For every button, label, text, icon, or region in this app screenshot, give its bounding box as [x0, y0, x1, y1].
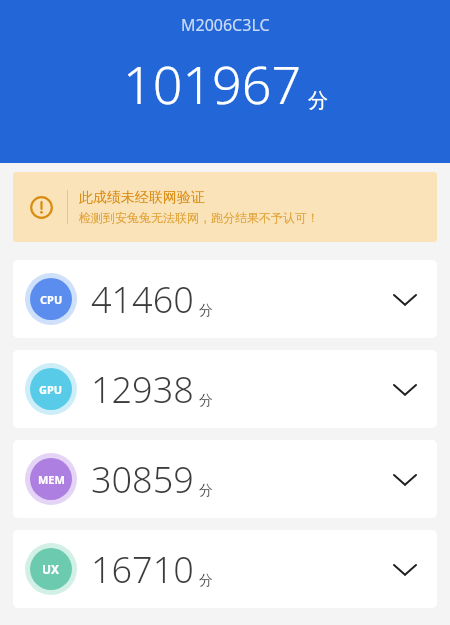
staticText: CPU: [40, 292, 63, 307]
staticText: 分: [308, 88, 328, 113]
staticText: 41460: [91, 275, 194, 324]
staticText: 16710: [91, 545, 194, 594]
staticText: 30859: [91, 455, 194, 504]
other: Warning: [30, 196, 53, 219]
staticText: 分: [199, 392, 213, 410]
staticText: 分: [199, 302, 213, 320]
staticText: 分: [199, 572, 213, 590]
button[interactable]: Expand MEM: [383, 457, 427, 501]
button[interactable]: Expand GPU: [383, 367, 427, 411]
staticText: M2006C3LC: [181, 14, 270, 36]
button[interactable]: Expand UX: [383, 547, 427, 591]
button[interactable]: MEM: [13, 440, 437, 518]
staticText: 12938: [91, 365, 194, 414]
staticText: 检测到安兔兔无法联网，跑分结果不予认可！: [79, 210, 319, 225]
button[interactable]: GPU: [13, 350, 437, 428]
staticText: 分: [199, 482, 213, 500]
staticText: GPU: [39, 382, 63, 397]
staticText: 此成绩未经联网验证: [79, 189, 205, 207]
staticText: MEM: [38, 472, 65, 487]
button[interactable]: CPU: [13, 260, 437, 338]
button[interactable]: Expand CPU: [383, 277, 427, 321]
button[interactable]: Warning: [13, 172, 437, 242]
staticText: 101967: [123, 48, 302, 119]
button[interactable]: UX: [13, 530, 437, 608]
staticText: UX: [42, 561, 60, 577]
